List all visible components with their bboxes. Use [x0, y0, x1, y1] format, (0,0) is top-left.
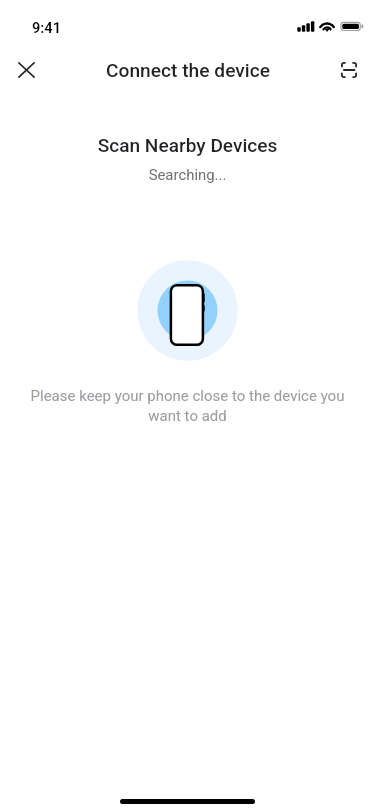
staticText: Please keep your phone close to the devi…	[20, 387, 355, 424]
staticText: Scan Nearby Devices	[0, 134, 375, 156]
button[interactable]: Close	[4, 48, 48, 92]
staticText: Searching...	[0, 166, 375, 183]
staticText: 9:41	[32, 19, 61, 36]
button[interactable]: Scan QR code	[327, 48, 371, 92]
staticText: Connect the device	[106, 59, 270, 82]
